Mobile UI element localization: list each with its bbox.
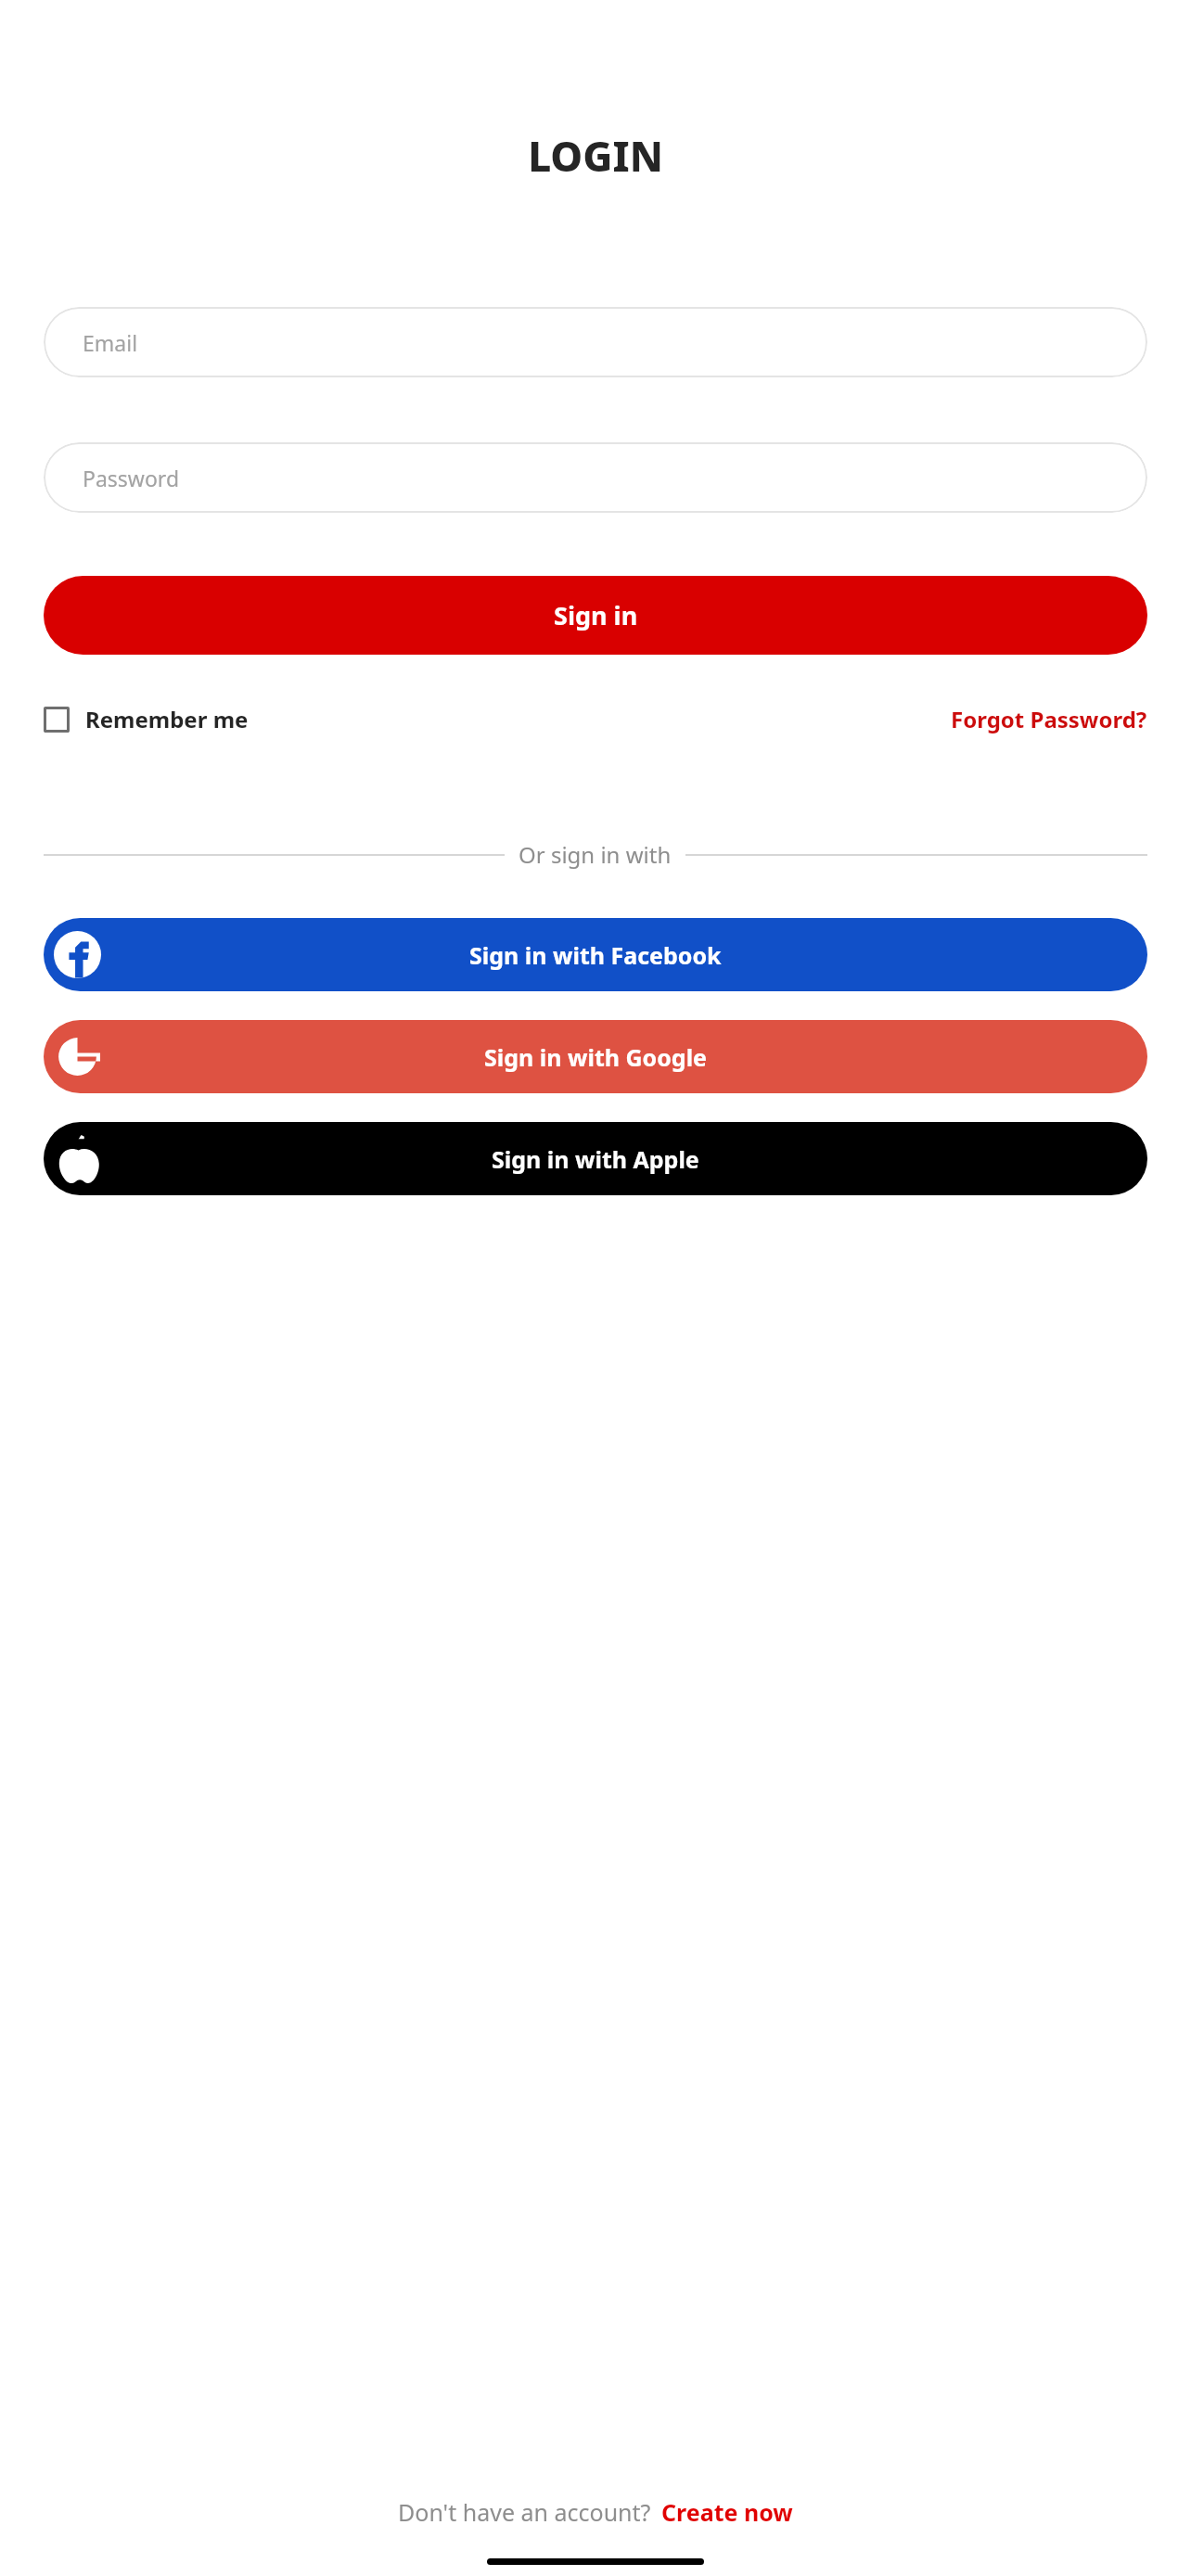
staticText: LOGIN [44,128,1147,184]
other: Google [54,1033,101,1080]
staticText: Create now [661,2496,793,2528]
staticText: Email [83,328,138,357]
button[interactable]: Forgot Password? [951,696,1147,742]
staticText: Don't have an account? [398,2496,651,2528]
button[interactable]: Sign in with Facebook [44,918,1147,991]
button[interactable]: Remember me [44,696,249,742]
button[interactable]: Create now [661,2496,793,2528]
staticText: Remember me [85,704,249,734]
other: Facebook [54,931,101,978]
other: Apple [54,1134,103,1183]
staticText: Or sign in with [519,839,672,870]
button[interactable]: Sign in with Apple [44,1122,1147,1195]
staticText: Sign in with Facebook [469,939,722,971]
staticText: Sign in with Google [484,1041,708,1073]
button[interactable]: Password [44,442,1147,513]
button[interactable]: Email [44,307,1147,377]
staticText: Forgot Password? [951,704,1147,734]
staticText: Sign in [554,598,638,632]
button[interactable]: Sign in with Google [44,1020,1147,1093]
staticText: Sign in with Apple [492,1143,699,1175]
button[interactable]: Sign in [44,576,1147,655]
staticText: Password [83,464,180,492]
